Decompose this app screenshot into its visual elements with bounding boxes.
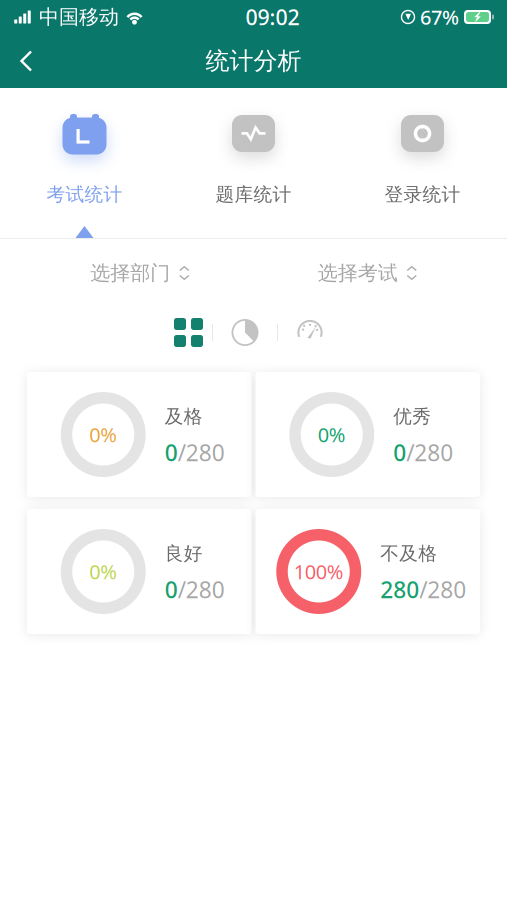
staticText: 0 <box>393 437 406 467</box>
button[interactable]: 0% <box>255 372 480 497</box>
staticText: 及格 <box>165 405 203 428</box>
staticText: 题库统计 <box>215 183 291 206</box>
staticText: 280 <box>380 574 419 604</box>
staticText: 67% <box>420 4 459 30</box>
button[interactable]: 选择部门 <box>26 239 253 307</box>
button[interactable]: Pie chart view <box>213 316 277 349</box>
staticText: 0% <box>89 558 117 585</box>
button[interactable]: Gauge view <box>278 316 342 349</box>
staticText: 选择考试 <box>318 261 398 285</box>
staticText: 考试统计 <box>46 183 122 206</box>
button[interactable]: 选择考试 <box>253 239 481 307</box>
button[interactable]: 考试统计 <box>0 88 169 238</box>
staticText: 0% <box>318 421 346 448</box>
button[interactable]: 登录统计 <box>338 88 507 238</box>
staticText: /280 <box>178 574 225 604</box>
button[interactable]: Back <box>0 36 51 86</box>
staticText: /280 <box>419 574 466 604</box>
staticText: 09:02 <box>245 3 299 31</box>
staticText: 100% <box>294 558 344 585</box>
button[interactable]: Grid view <box>165 316 212 349</box>
staticText: /280 <box>406 437 453 467</box>
staticText: 不及格 <box>380 542 437 565</box>
button[interactable]: 100% <box>255 509 480 634</box>
staticText: 良好 <box>165 542 203 565</box>
staticText: 统计分析 <box>205 46 301 76</box>
staticText: 优秀 <box>393 405 431 428</box>
button[interactable]: 题库统计 <box>169 88 338 238</box>
staticText: 选择部门 <box>90 261 170 285</box>
staticText: 登录统计 <box>384 183 460 206</box>
staticText: 0 <box>165 437 178 467</box>
button[interactable]: 0% <box>27 509 251 634</box>
staticText: /280 <box>178 437 225 467</box>
staticText: 0% <box>89 421 117 448</box>
staticText: 0 <box>165 574 178 604</box>
staticText: 中国移动 <box>39 5 119 29</box>
button[interactable]: 0% <box>27 372 251 497</box>
